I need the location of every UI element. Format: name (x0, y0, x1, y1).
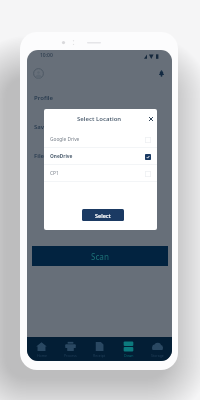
staticText: 10:00 (40, 52, 53, 59)
staticText: CP1 (50, 170, 59, 177)
staticText: File (34, 152, 45, 160)
button[interactable] (145, 171, 151, 177)
button[interactable]: Storage (143, 337, 172, 361)
button[interactable]: Select (82, 209, 124, 221)
button[interactable]: Down (114, 337, 143, 361)
staticText: Scan (91, 251, 109, 262)
staticText: Home (37, 353, 47, 358)
button[interactable]: Profile avatar (32, 67, 45, 80)
staticText: Select Location (77, 115, 122, 123)
staticText: Process (64, 353, 77, 358)
button[interactable]: Google Drive (44, 131, 157, 148)
staticText: Google Drive (50, 136, 80, 143)
button[interactable] (145, 137, 151, 143)
button[interactable]: Notifications (155, 67, 168, 80)
button[interactable]: CP1 (44, 165, 157, 182)
button[interactable]: Home (27, 337, 56, 361)
staticText: OneDrive (50, 153, 73, 160)
button[interactable] (145, 154, 151, 160)
staticText: Save (34, 123, 48, 131)
button[interactable]: Process (56, 337, 85, 361)
staticText: Profile (34, 94, 54, 102)
staticText: Select (95, 212, 111, 219)
staticText: Storage (151, 353, 164, 358)
button[interactable]: Close (145, 113, 156, 124)
staticText: Down (124, 353, 134, 358)
button[interactable]: OneDrive (44, 148, 157, 165)
button[interactable]: Scan (32, 246, 168, 266)
staticText: Receipt (93, 353, 106, 358)
button[interactable]: Receipt (85, 337, 114, 361)
